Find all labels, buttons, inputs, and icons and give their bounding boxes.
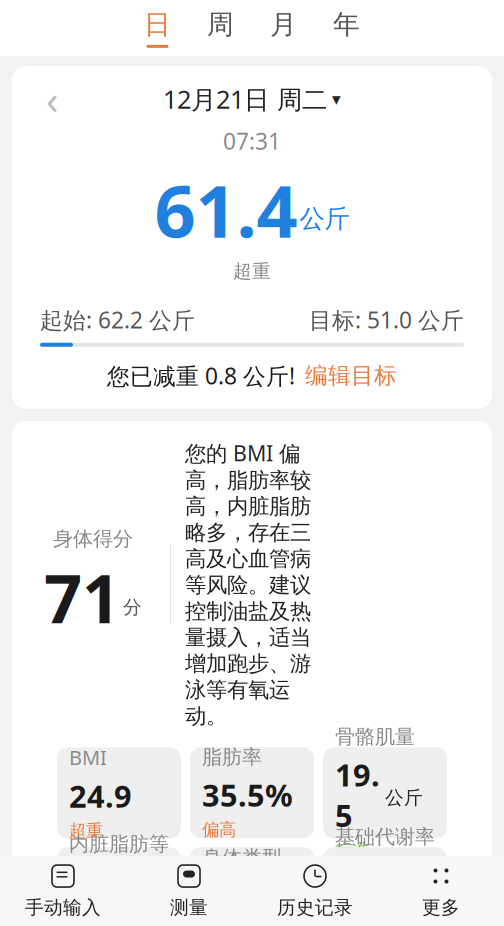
staticText: 目标: 51.0 公斤	[309, 305, 464, 335]
staticText: 07:31	[223, 126, 281, 156]
staticText: 日	[144, 8, 171, 41]
staticText: 超重	[69, 820, 103, 841]
staticText: 61.4	[154, 162, 297, 258]
button[interactable]: 编辑目标	[305, 362, 397, 390]
staticText: 1,187	[335, 854, 380, 926]
staticText: 标准	[335, 840, 369, 861]
button[interactable]: 返回	[30, 80, 74, 118]
staticText: 偏高	[202, 819, 236, 840]
staticText: 19.5	[335, 754, 380, 835]
staticText: ▾	[332, 89, 341, 109]
staticText: 71	[44, 553, 120, 641]
button[interactable]: 更多	[378, 856, 504, 926]
staticText: 骨骼肌量	[335, 725, 415, 749]
staticText: 年	[333, 8, 360, 41]
staticText: 您已减重 0.8 公斤!	[107, 361, 295, 391]
button[interactable]: 周	[189, 5, 252, 51]
staticText: 更多	[422, 896, 460, 919]
staticText: 24.9	[69, 775, 132, 816]
button[interactable]: 内脏脂肪等级	[57, 847, 181, 926]
staticText: 脂肪率	[202, 745, 262, 769]
staticText: 分	[123, 596, 142, 619]
staticText: 起始: 62.2 公斤	[40, 305, 195, 335]
staticText: 身体得分	[53, 526, 133, 551]
button[interactable]: 身体类型	[190, 847, 314, 926]
staticText: 测量	[170, 896, 208, 919]
staticText: 6.0	[69, 886, 114, 926]
staticText: 历史记录	[277, 896, 353, 919]
staticText: 超重	[233, 260, 271, 283]
button[interactable]: 测量	[126, 856, 252, 926]
staticText: 您的 BMI 偏高，脂肪率较高，内脏脂肪略多，存在三高及心血管病等风险。建议控制…	[185, 439, 311, 729]
staticText: ‹	[46, 72, 58, 125]
button[interactable]: 手动输入	[0, 856, 126, 926]
staticText: 编辑目标	[305, 362, 397, 390]
staticText: 内脏脂肪等级	[69, 832, 169, 881]
staticText: 手动输入	[25, 896, 101, 919]
staticText: 公斤	[385, 786, 423, 809]
button[interactable]: 月	[252, 5, 315, 51]
button[interactable]: 日	[126, 5, 189, 51]
staticText: 身体类型	[202, 846, 282, 870]
button[interactable]: 脂肪率	[190, 747, 314, 838]
staticText: BMI	[69, 744, 107, 770]
button[interactable]: 12月21日 周二	[163, 80, 341, 118]
staticText: 基础代谢率	[335, 825, 435, 849]
staticText: 35.5%	[202, 774, 293, 815]
staticText: 公斤	[299, 203, 349, 234]
button[interactable]: 基础代谢率	[323, 847, 447, 926]
button[interactable]: BMI	[57, 747, 181, 838]
button[interactable]: 历史记录	[252, 856, 378, 926]
staticText: 标准型	[202, 875, 295, 913]
button[interactable]: 骨骼肌量	[323, 747, 447, 838]
staticText: 12月21日 周二	[163, 82, 327, 116]
button[interactable]: 年	[315, 5, 378, 51]
staticText: 月	[270, 8, 297, 41]
staticText: 周	[207, 8, 234, 41]
